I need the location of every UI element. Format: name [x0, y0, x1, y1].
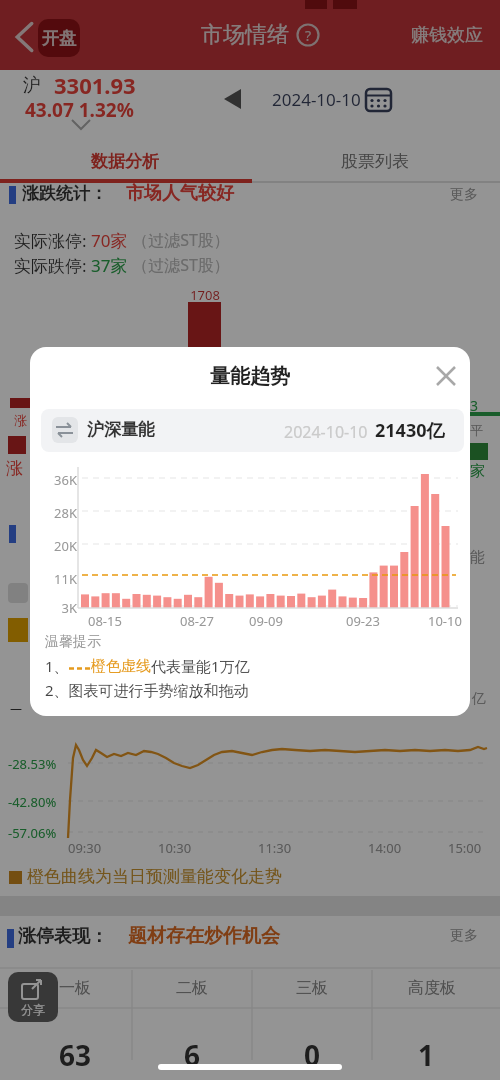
staticText: 三板 [252, 978, 372, 998]
staticText: 家 [470, 462, 485, 481]
staticText: 11:30 [258, 839, 292, 857]
staticText: 2024-10-10 [272, 88, 361, 111]
button[interactable] [255, 82, 405, 116]
staticText: 09:30 [68, 839, 102, 857]
staticText: 3 [470, 396, 479, 415]
staticText: 涨 [14, 412, 27, 428]
staticText: 代表量能1万亿 [151, 656, 250, 676]
staticText: 沪深量能 [87, 419, 155, 440]
staticText: 二板 [132, 978, 252, 998]
staticText: 2、图表可进行手势缩放和拖动 [45, 680, 249, 700]
staticText: 3301.93 [54, 70, 136, 100]
staticText: ? [305, 26, 312, 45]
button[interactable]: 分享 [8, 972, 58, 1022]
staticText: 21430亿 [375, 418, 445, 443]
staticText: — [10, 700, 23, 716]
staticText: 分享 [21, 1002, 45, 1017]
button[interactable]: 沪深量能 [41, 409, 464, 452]
staticText: 63 [15, 1036, 135, 1074]
button[interactable]: 开盘 [38, 19, 80, 57]
staticText: 市场人气较好 [126, 182, 234, 205]
staticText: 量能趋势 [30, 364, 470, 389]
staticText: 一板 [15, 978, 135, 998]
staticText: 2024-10-10 [284, 421, 368, 443]
staticText: 15:00 [448, 839, 482, 857]
staticText: 43.07 1.32% [25, 97, 134, 123]
staticText: 橙色虚线 [91, 657, 151, 676]
staticText: 20K [50, 537, 77, 555]
button[interactable]: 赚钱效应 [400, 0, 493, 70]
staticText: 10:30 [158, 839, 192, 857]
staticText: 11K [50, 570, 77, 588]
staticText: 涨 [6, 458, 23, 479]
staticText: 1 [372, 1036, 480, 1074]
staticText: 平 [470, 422, 483, 438]
staticText: 开盘 [42, 28, 76, 49]
staticText: 37家 [91, 254, 128, 277]
staticText: 3K [50, 599, 77, 617]
staticText: 实际跌停: [14, 254, 91, 277]
staticText: 涨跌统计： [22, 183, 107, 204]
staticText: -57.06% [8, 824, 57, 842]
staticText: 70家 [91, 229, 128, 252]
button[interactable] [435, 365, 457, 387]
staticText: 36K [50, 471, 77, 489]
staticText: -42.80% [8, 793, 57, 811]
staticText: 更多 [450, 186, 478, 204]
staticText: 温馨提示 [45, 633, 101, 651]
staticText: -28.53% [8, 755, 57, 773]
staticText: 08-27 [180, 612, 214, 630]
staticText: （过滤ST股） [128, 254, 230, 276]
staticText: 沪 [23, 74, 41, 97]
staticText: 1708 [188, 286, 222, 304]
staticText: （过滤ST股） [128, 229, 230, 251]
staticText: 09-09 [249, 612, 283, 630]
staticText: 0 [252, 1036, 372, 1074]
staticText: 实际涨停: [14, 229, 91, 252]
staticText: 亿 [472, 690, 486, 708]
button[interactable] [224, 89, 241, 109]
staticText: 1、 [45, 656, 69, 676]
button[interactable]: 数据分析 [0, 140, 250, 183]
staticText: 能 [470, 548, 485, 567]
staticText: 更多 [450, 927, 478, 945]
button[interactable] [15, 22, 34, 52]
staticText: 10-10 [428, 612, 462, 630]
staticText: 数据分析 [91, 151, 159, 172]
staticText: 涨停表现： [18, 925, 108, 948]
staticText: 08-15 [88, 612, 122, 630]
staticText: 赚钱效应 [411, 24, 483, 47]
staticText: 市场情绪 [201, 21, 289, 49]
staticText: 6 [132, 1036, 252, 1074]
staticText: 股票列表 [341, 151, 409, 172]
staticText: 14:00 [368, 839, 402, 857]
staticText: 09-23 [346, 612, 380, 630]
button[interactable]: 股票列表 [250, 140, 500, 183]
staticText: 28K [50, 504, 77, 522]
staticText: 高度板 [372, 978, 492, 998]
staticText: 题材存在炒作机会 [128, 924, 280, 948]
staticText: 橙色曲线为当日预测量能变化走势 [27, 866, 282, 887]
